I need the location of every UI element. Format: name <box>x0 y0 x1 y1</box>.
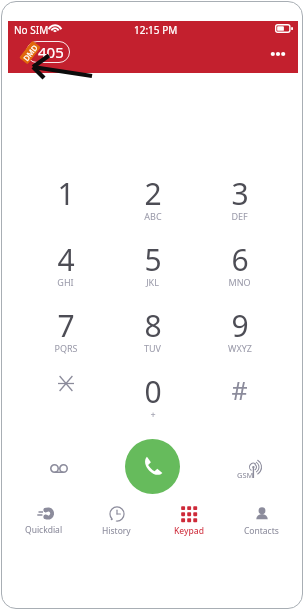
button[interactable]: Contacts <box>225 501 298 541</box>
button[interactable]: 9 <box>196 293 283 359</box>
button[interactable] <box>22 359 109 425</box>
staticText: WXYZ <box>228 342 252 354</box>
button[interactable]: 2 <box>109 161 196 227</box>
staticText: + <box>150 408 156 420</box>
staticText: 8 <box>144 305 162 346</box>
button[interactable]: 405 <box>26 41 70 63</box>
staticText: 405 <box>38 42 64 62</box>
staticText: JKL <box>146 276 159 288</box>
button[interactable]: 4 <box>22 227 109 293</box>
staticText: 2 <box>144 173 162 214</box>
staticText: 0 <box>144 371 162 412</box>
button[interactable]: Keypad <box>152 501 225 541</box>
staticText: 3 <box>231 173 249 214</box>
button[interactable]: 8 <box>109 293 196 359</box>
staticText: 12:15 PM <box>134 23 178 37</box>
button[interactable]: 1 <box>22 161 109 227</box>
button[interactable]: GSM network <box>196 435 283 497</box>
staticText: Quickdial <box>25 524 63 536</box>
staticText: # <box>231 373 248 407</box>
button[interactable]: 7 <box>22 293 109 359</box>
button[interactable]: Call <box>125 439 180 494</box>
staticText: 5 <box>144 239 162 280</box>
staticText: 7 <box>57 305 75 346</box>
staticText: 6 <box>231 239 249 280</box>
staticText: 9 <box>231 305 249 346</box>
staticText: No SIM <box>14 23 49 37</box>
staticText: Contacts <box>244 525 279 537</box>
staticText: TUV <box>144 342 161 354</box>
staticText: 4 <box>57 239 75 280</box>
button[interactable]: 6 <box>196 227 283 293</box>
button[interactable]: Quickdial <box>8 501 80 541</box>
staticText: History <box>102 525 131 537</box>
staticText: DEF <box>231 210 248 222</box>
button[interactable]: 3 <box>196 161 283 227</box>
staticText: ABC <box>144 210 162 222</box>
staticText: Keypad <box>174 525 204 537</box>
staticText: GSM <box>237 470 254 480</box>
button[interactable]: Voicemail <box>22 435 109 497</box>
staticText: MNO <box>228 276 251 288</box>
staticText: DMD <box>21 43 40 63</box>
staticText: GHI <box>57 276 74 288</box>
button[interactable]: 5 <box>109 227 196 293</box>
button[interactable]: History <box>80 501 152 541</box>
staticText: PQRS <box>54 342 78 354</box>
button[interactable]: # <box>196 359 283 425</box>
button[interactable]: 0 <box>109 359 196 425</box>
staticText: 1 <box>57 173 75 214</box>
button[interactable]: More options <box>263 43 293 65</box>
